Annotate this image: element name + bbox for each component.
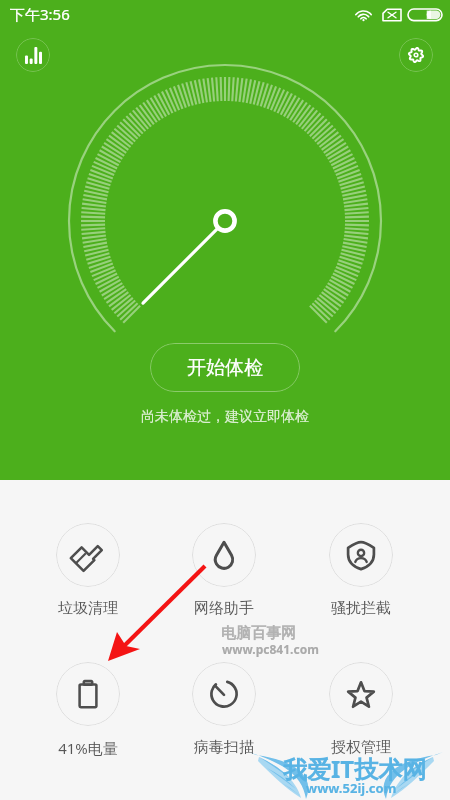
staticText: 电脑百事网 (221, 624, 296, 643)
button[interactable]: 开始体检 (150, 343, 300, 392)
button[interactable]: Settings (399, 38, 433, 72)
staticText: www.52ij.com (306, 779, 397, 797)
staticText: 垃圾清理 (58, 599, 118, 618)
staticText: 网络助手 (194, 599, 254, 618)
button[interactable]: 41%电量 (33, 662, 143, 758)
staticText: www.pc841.com (222, 641, 319, 657)
button[interactable]: 网络助手 (169, 523, 279, 618)
staticText: 41%电量 (58, 738, 118, 758)
staticText: 我爱IT技术网 (283, 752, 427, 785)
staticText: 下午3:56 (10, 4, 70, 24)
staticText: 开始体检 (187, 356, 263, 380)
button[interactable]: 骚扰拦截 (306, 523, 416, 618)
staticText: 病毒扫描 (194, 738, 254, 757)
button[interactable]: Statistics (16, 38, 50, 72)
button[interactable]: 病毒扫描 (169, 662, 279, 757)
button[interactable]: 授权管理 (306, 662, 416, 757)
staticText: 授权管理 (331, 738, 391, 757)
button[interactable]: 垃圾清理 (33, 523, 143, 618)
staticText: 骚扰拦截 (331, 599, 391, 618)
staticText: 尚未体检过，建议立即体检 (141, 408, 309, 426)
